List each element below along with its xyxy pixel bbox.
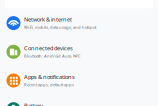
staticText: Connected devices: [24, 44, 73, 52]
staticText: Apps & notifications: [24, 73, 75, 81]
staticText: Battery: [24, 102, 43, 106]
staticText: Wi-Fi, mobile, data usage, and hotspot: [24, 24, 96, 30]
button[interactable]: Network & internet: [0, 9, 158, 37]
staticText: Network & internet: [24, 15, 72, 23]
staticText: Bluetooth, Android Auto, NFC: [24, 53, 81, 59]
staticText: Recent apps, default apps: [24, 82, 74, 87]
button[interactable]: Connected devices: [0, 37, 158, 66]
button[interactable]: Apps & notifications: [0, 66, 158, 95]
button[interactable]: Battery: [0, 95, 158, 106]
